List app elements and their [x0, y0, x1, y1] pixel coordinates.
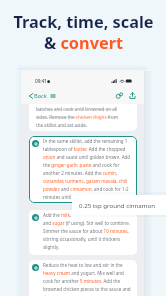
button[interactable]: Add the milk, and sugar (if using). Stir… — [29, 210, 137, 255]
button[interactable]: Scale recipe — [116, 92, 123, 99]
button[interactable]: Back — [29, 92, 47, 100]
button[interactable]: Share — [129, 92, 136, 99]
staticText: Track, time, scale & convert — [13, 11, 154, 54]
button[interactable]: 0.25 tsp ground cinnamon — [72, 195, 166, 215]
button[interactable]: Reduce the heat to low and stir in the h… — [29, 260, 137, 296]
button[interactable]: In the same skillet, add the remaining 1… — [29, 136, 137, 203]
staticText: batches and cook until browned on all si… — [36, 106, 125, 129]
button[interactable]: batches and cook until browned on all si… — [29, 104, 137, 131]
staticText: Add the milk, and sugar (if using). Stir… — [43, 212, 132, 251]
button[interactable]: Menu — [50, 93, 56, 99]
staticText: 09:41 — [35, 78, 48, 84]
staticText: In the same skillet, add the remaining 1… — [43, 138, 132, 201]
staticText: 0.25 tsp ground cinnamon — [79, 201, 155, 209]
staticText: Back — [34, 92, 47, 100]
staticText: Reduce the heat to low and stir in the h… — [43, 262, 132, 296]
